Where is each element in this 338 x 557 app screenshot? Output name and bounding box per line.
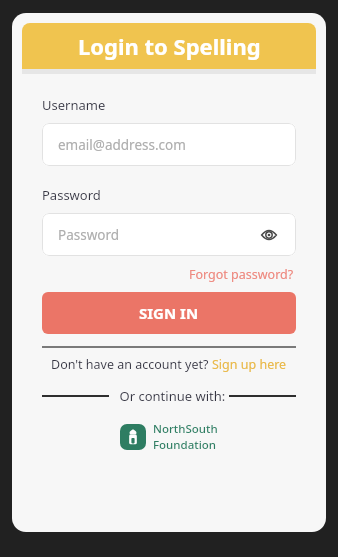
staticText: Username bbox=[42, 96, 106, 114]
staticText: Or continue with: bbox=[109, 387, 229, 405]
button[interactable]: Forgot password? bbox=[187, 265, 296, 284]
staticText: Password bbox=[42, 186, 101, 204]
staticText: Login to Spelling bbox=[78, 31, 261, 61]
staticText: email@address.com bbox=[58, 136, 186, 154]
staticText: Don't have an account yet? bbox=[51, 356, 212, 373]
staticText: SIGN IN bbox=[139, 303, 199, 323]
button[interactable]: NorthSouth bbox=[118, 419, 220, 455]
button[interactable]: Password bbox=[42, 213, 296, 256]
staticText: Forgot password? bbox=[189, 266, 294, 283]
staticText: Foundation bbox=[153, 437, 216, 453]
button[interactable]: Show password bbox=[258, 224, 280, 246]
button[interactable]: SIGN IN bbox=[42, 292, 296, 334]
button[interactable]: email@address.com bbox=[42, 123, 296, 166]
staticText: Password bbox=[58, 226, 120, 244]
staticText: Sign up here bbox=[212, 356, 287, 373]
staticText: NorthSouth bbox=[153, 421, 218, 437]
button[interactable]: Sign up here bbox=[212, 356, 287, 373]
